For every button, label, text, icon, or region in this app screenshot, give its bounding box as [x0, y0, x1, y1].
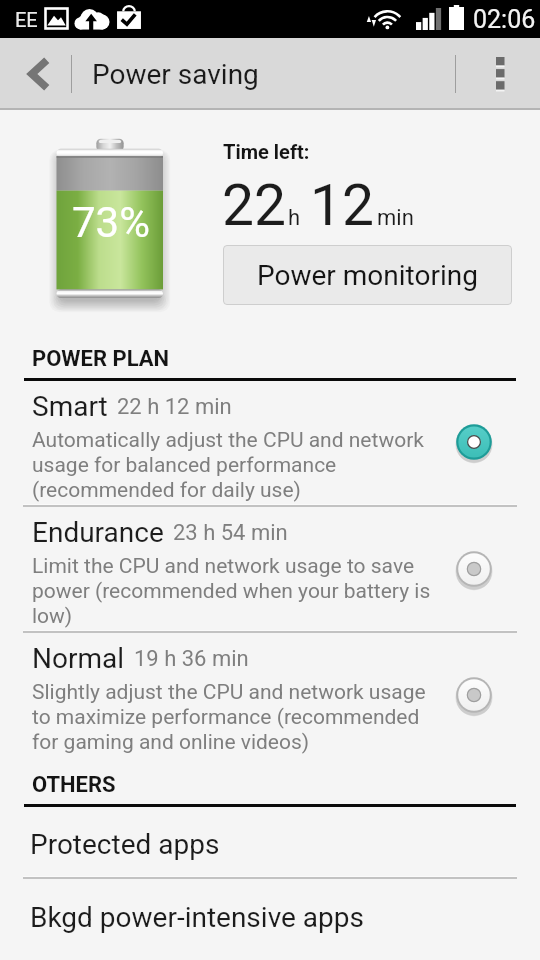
staticText: Power monitoring — [257, 259, 478, 292]
staticText: 73% — [72, 198, 150, 247]
staticText: min — [377, 205, 414, 231]
button[interactable]: Endurance — [0, 506, 540, 631]
button[interactable]: Protected apps — [0, 806, 540, 877]
staticText: Slightly adjust the CPU and network usag… — [32, 680, 426, 705]
staticText: 02:06 — [473, 5, 536, 34]
staticText: power (recommended when your battery is — [32, 579, 431, 604]
button[interactable]: Normal — [0, 632, 540, 757]
other: Select Normal — [452, 673, 496, 717]
staticText: POWER PLAN — [32, 346, 170, 372]
staticText: 22 — [222, 172, 287, 239]
button[interactable]: Back — [3, 38, 75, 110]
staticText: Protected apps — [30, 828, 220, 861]
staticText: Automatically adjust the CPU and network — [32, 428, 424, 453]
other: Smart selected — [452, 420, 496, 464]
button[interactable]: Bkgd power-intensive apps — [0, 878, 540, 949]
staticText: h — [288, 205, 301, 231]
staticText: 12 — [310, 172, 375, 239]
staticText: Bkgd power-intensive apps — [30, 901, 364, 934]
staticText: OTHERS — [32, 772, 116, 798]
button[interactable]: Smart — [0, 382, 540, 505]
staticText: 23 h 54 min — [173, 520, 288, 546]
staticText: Normal — [32, 642, 125, 675]
button[interactable]: More options — [460, 38, 540, 110]
other: Select Endurance — [452, 547, 496, 591]
staticText: Limit the CPU and network usage to save — [32, 554, 415, 579]
staticText: to maximize performance (recommended — [32, 705, 420, 730]
staticText: usage for balanced performance — [32, 453, 337, 478]
staticText: (recommended for daily use) — [32, 478, 301, 503]
staticText: 19 h 36 min — [134, 646, 249, 672]
staticText: 22 h 12 min — [117, 394, 232, 420]
staticText: EE — [15, 8, 38, 31]
staticText: Power saving — [92, 58, 259, 91]
staticText: Smart — [32, 390, 108, 423]
staticText: Endurance — [32, 516, 164, 549]
button[interactable]: Power monitoring — [223, 245, 512, 305]
staticText: low) — [32, 604, 73, 629]
staticText: for gaming and online videos) — [32, 730, 310, 755]
staticText: Time left: — [223, 140, 310, 163]
